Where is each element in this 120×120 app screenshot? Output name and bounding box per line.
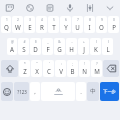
staticText: * (24, 62, 26, 66)
staticText: 5 (53, 18, 55, 22)
staticText: F (46, 45, 50, 53)
staticText: @ (11, 40, 14, 44)
button[interactable]: . (76, 82, 86, 101)
button[interactable]: Hide keyboard (103, 1, 117, 15)
button[interactable]: 2 (12, 16, 23, 33)
button[interactable]: 3 (24, 16, 35, 33)
button[interactable]: 5 (48, 16, 59, 33)
staticText: 2 (17, 18, 19, 22)
staticText: ( (96, 40, 97, 44)
staticText: E (28, 23, 32, 31)
button[interactable]: * (19, 60, 30, 77)
staticText: I (88, 23, 91, 31)
staticText: _ (47, 40, 49, 44)
button[interactable]: 8 (84, 16, 95, 33)
staticText: S (22, 45, 26, 53)
staticText: P (112, 23, 116, 31)
button[interactable]: 6 (60, 16, 71, 33)
staticText: 8 (89, 18, 91, 22)
staticText: W (15, 23, 21, 31)
button[interactable]: _ (42, 38, 53, 55)
button[interactable]: ' (43, 60, 54, 77)
button[interactable]: ) (102, 38, 113, 55)
staticText: R (40, 23, 44, 31)
staticText: 3 (29, 18, 31, 22)
staticText: ? (96, 62, 98, 66)
staticText: L (106, 45, 110, 53)
staticText: & (58, 40, 61, 44)
staticText: 中 (90, 88, 96, 95)
button[interactable]: ( (90, 38, 101, 55)
staticText: + (83, 40, 85, 44)
staticText: 4 (41, 18, 43, 22)
staticText: : (61, 62, 62, 66)
button[interactable]: $ (30, 38, 41, 55)
staticText: A (10, 45, 14, 53)
staticText: C (47, 67, 51, 75)
staticText: O (99, 23, 104, 31)
button[interactable]: " (31, 60, 42, 77)
staticText: Y (64, 23, 68, 31)
staticText: # (23, 40, 26, 44)
button[interactable]: Themes (23, 1, 37, 15)
staticText: Z (23, 67, 27, 75)
staticText: B (70, 67, 75, 75)
staticText: N (82, 67, 87, 75)
staticText: 7 (77, 18, 79, 22)
button[interactable]: - (66, 38, 77, 55)
staticText: J (83, 45, 85, 53)
staticText: U (75, 23, 80, 31)
button[interactable]: Voice input (63, 1, 77, 15)
button[interactable]: : (55, 60, 66, 77)
button[interactable]: 下一步 (100, 82, 119, 101)
staticText: ' (49, 62, 50, 66)
staticText: 6 (65, 18, 67, 22)
button[interactable]: Settings (83, 1, 97, 15)
staticText: 9 (101, 18, 103, 22)
button[interactable]: 0 (108, 16, 119, 33)
staticText: 0 (113, 18, 115, 22)
staticText: - (71, 40, 73, 44)
staticText: K (94, 45, 98, 53)
staticText: ?123 (17, 89, 27, 95)
staticText: ! (84, 62, 85, 66)
staticText: M (94, 67, 100, 75)
staticText: , (34, 88, 36, 96)
staticText: 下一步 (103, 89, 116, 94)
button[interactable]: # (18, 38, 29, 55)
button[interactable]: ? (91, 60, 102, 77)
button[interactable]: & (54, 38, 65, 55)
button[interactable]: 9 (96, 16, 107, 33)
staticText: T (52, 23, 56, 31)
button[interactable]: ! (79, 60, 90, 77)
button[interactable]: Stickers (3, 1, 17, 15)
button[interactable]: 1 (1, 16, 11, 33)
button[interactable]: 7 (72, 16, 83, 33)
staticText: 1 (6, 18, 8, 22)
staticText: ; (72, 62, 73, 66)
button[interactable]: ?123 (14, 82, 29, 101)
button[interactable]: Clipboard (43, 1, 57, 15)
staticText: Q (4, 23, 9, 31)
button[interactable]: Emoji (1, 82, 13, 101)
button[interactable]: , (30, 82, 40, 101)
button[interactable]: Space (41, 82, 75, 101)
staticText: ) (108, 40, 109, 44)
button[interactable]: Backspace (103, 60, 119, 77)
button[interactable]: 中 (87, 82, 99, 101)
staticText: H (69, 45, 74, 53)
staticText: . (80, 88, 82, 96)
staticText: " (36, 62, 38, 66)
button[interactable]: @ (7, 38, 17, 55)
staticText: G (57, 45, 62, 53)
button[interactable]: ; (67, 60, 78, 77)
button[interactable]: 4 (36, 16, 47, 33)
staticText: V (59, 67, 63, 75)
button[interactable]: + (78, 38, 89, 55)
staticText: D (33, 45, 38, 53)
staticText: $ (35, 40, 37, 44)
button[interactable]: Shift (1, 60, 18, 77)
staticText: X (35, 67, 39, 75)
